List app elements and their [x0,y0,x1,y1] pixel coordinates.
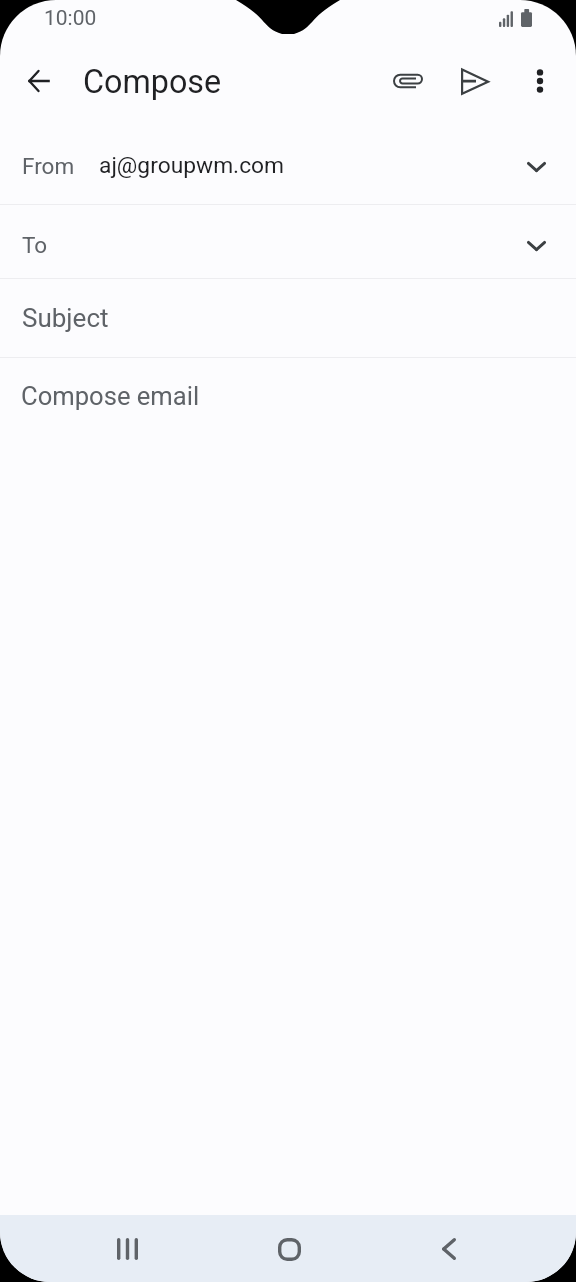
staticText: Compose email [21,381,200,411]
button[interactable]: Attach file [383,57,431,105]
button[interactable]: Home [257,1225,321,1273]
button[interactable]: Recent apps [95,1225,159,1273]
staticText: 10:00 [44,6,97,31]
staticText: aj@groupwm.com [99,152,285,179]
button[interactable]: More options [516,57,564,105]
staticText: Subject [22,303,109,333]
button[interactable]: To [0,205,576,278]
button[interactable]: Back [417,1225,481,1273]
staticText: To [22,232,48,258]
staticText: From [22,153,75,179]
button[interactable]: Compose email [0,358,576,432]
staticText: Compose [83,63,222,101]
button[interactable]: Subject [0,279,576,357]
button[interactable]: From [0,121,576,204]
button[interactable]: Navigate up [15,57,63,105]
button[interactable]: Send [451,57,499,105]
